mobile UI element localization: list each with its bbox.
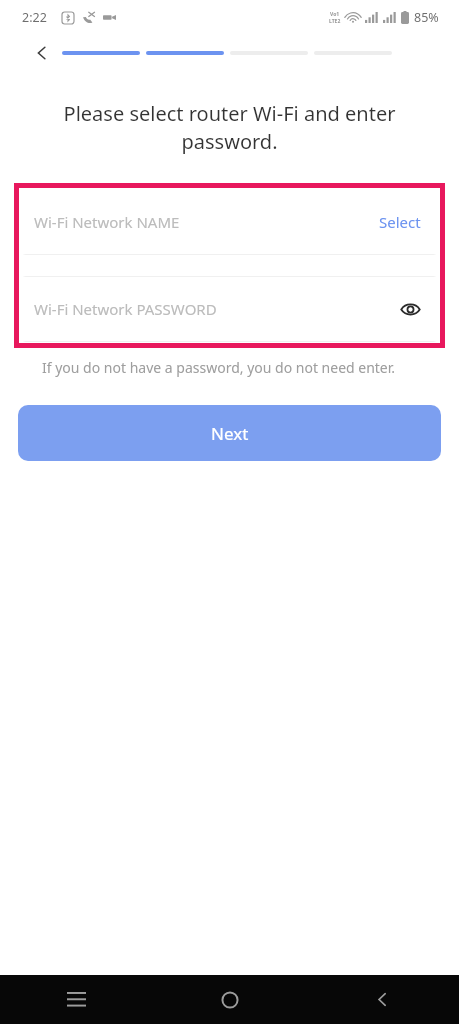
button[interactable]: Select xyxy=(375,208,425,236)
staticText: 85% xyxy=(414,9,439,26)
button[interactable]: Recent apps xyxy=(0,975,153,1024)
staticText: Next xyxy=(211,422,249,445)
staticText: Wi-Fi Network PASSWORD xyxy=(34,299,395,319)
staticText: Select xyxy=(379,212,421,232)
button[interactable]: Wi-Fi Network NAME xyxy=(20,189,439,255)
staticText: Vo1 xyxy=(330,11,340,18)
staticText: If you do not have a password, you do no… xyxy=(42,358,429,377)
button[interactable]: Back xyxy=(28,39,56,67)
staticText: Please select router Wi-Fi and enter pas… xyxy=(26,100,433,155)
button[interactable]: Back xyxy=(306,975,459,1024)
staticText: Wi-Fi Network NAME xyxy=(34,212,375,232)
button[interactable]: Show password xyxy=(395,294,425,324)
button[interactable]: Next xyxy=(18,405,441,461)
staticText: 2:22 xyxy=(22,9,47,26)
button[interactable]: Home xyxy=(153,975,306,1024)
button[interactable]: Wi-Fi Network PASSWORD xyxy=(20,276,439,342)
staticText: LTE2 xyxy=(329,18,341,25)
